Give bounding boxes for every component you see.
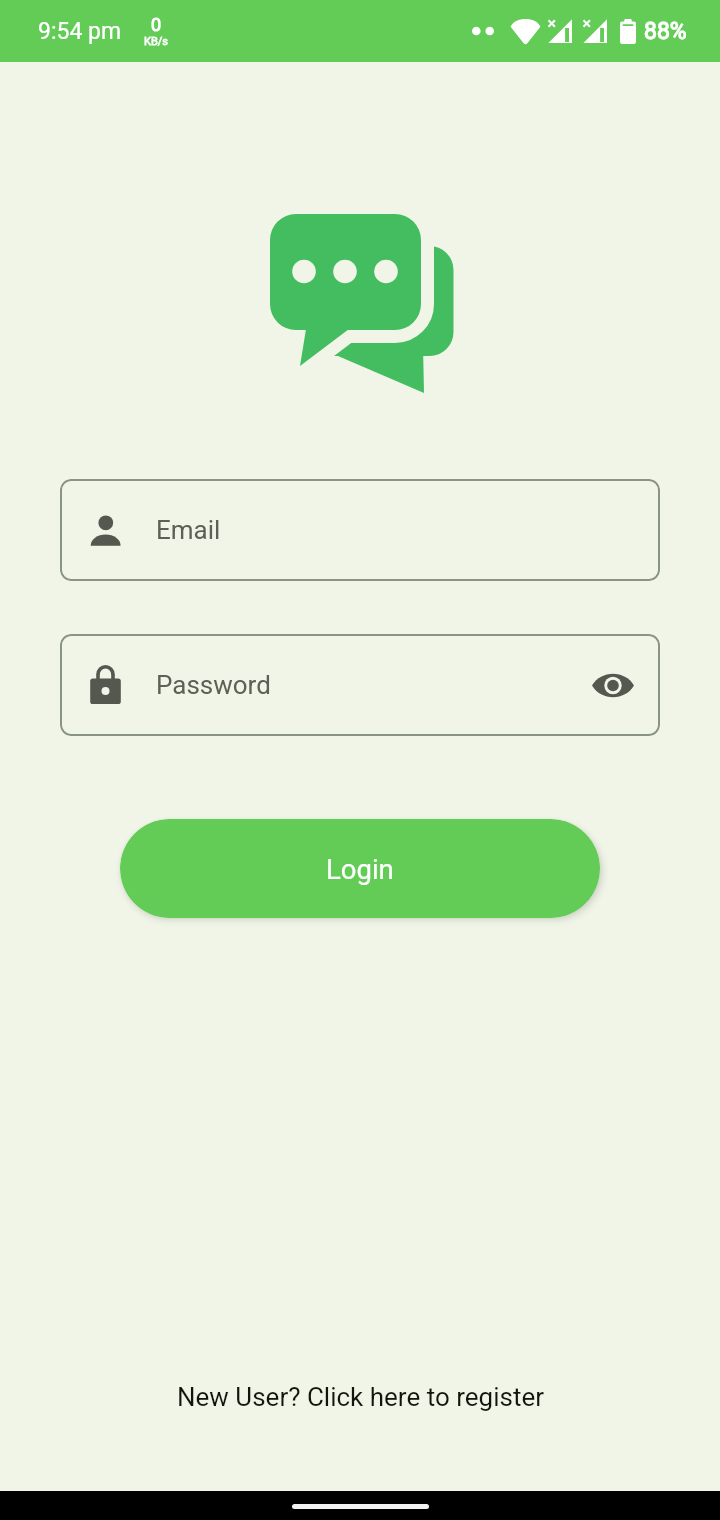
button[interactable]: Password [60,634,660,736]
button[interactable]: New User? Click here to register [169,1376,552,1418]
staticText: Login [326,853,394,885]
button[interactable]: Email [60,479,660,581]
staticText: Password [156,670,271,700]
staticText: 9:54 pm [38,18,122,45]
staticText: New User? Click here to register [177,1382,544,1412]
staticText: Email [156,515,221,545]
staticText: 88% [644,18,687,45]
button[interactable]: Login [120,819,600,918]
staticText: 0 [151,14,162,35]
staticText: KB/s [144,35,168,48]
button[interactable]: Show password [588,660,638,710]
